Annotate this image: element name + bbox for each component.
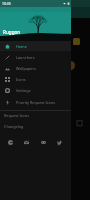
button[interactable]: Open link	[75, 118, 84, 127]
staticText: Ruggon	[3, 29, 21, 35]
staticText: Launchers	[16, 55, 35, 60]
button[interactable]: Reddit	[38, 137, 48, 147]
staticText: Wallpapers	[16, 66, 36, 71]
staticText: Settings	[16, 88, 31, 93]
button[interactable]: Launchers	[0, 52, 71, 62]
staticText: Icons	[16, 77, 26, 82]
staticText: Priority Request Icons	[16, 100, 56, 105]
staticText: Request Icons	[4, 113, 30, 118]
button[interactable]: Wallpapers	[0, 63, 71, 73]
button[interactable]: Google Plus	[5, 137, 15, 147]
button[interactable]: Icons	[0, 74, 71, 84]
button[interactable]: Priority Request Icons	[0, 97, 71, 107]
staticText: Changelog	[4, 124, 24, 129]
button[interactable]: Twitter	[54, 137, 64, 147]
button[interactable]: Settings	[0, 85, 71, 95]
staticText: 10:35	[2, 1, 11, 6]
staticText: Home	[16, 44, 27, 49]
button[interactable]: Changelog	[0, 122, 71, 131]
button[interactable]: Request Icons	[0, 111, 71, 120]
button[interactable]: Home	[0, 41, 71, 51]
button[interactable]: Email	[21, 137, 31, 147]
